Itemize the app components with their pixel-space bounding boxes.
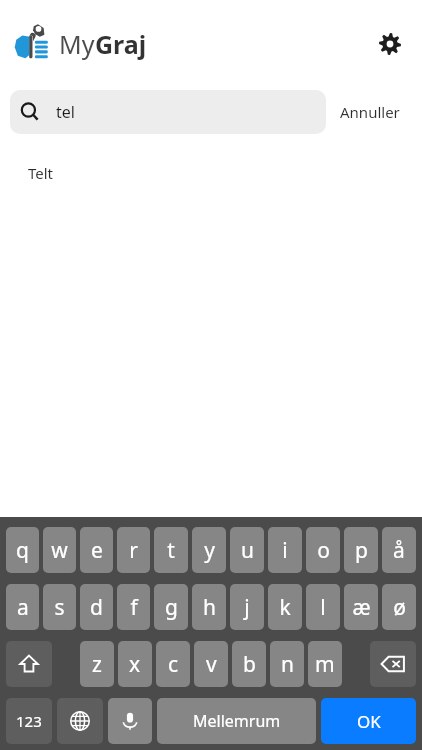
button[interactable]: o xyxy=(306,527,340,573)
staticText: p xyxy=(355,536,368,565)
staticText: e xyxy=(91,536,103,565)
button[interactable]: ø xyxy=(382,584,416,630)
button[interactable]: s xyxy=(43,584,76,630)
staticText: k xyxy=(279,593,291,622)
button[interactable]: v xyxy=(194,641,228,687)
button[interactable]: æ xyxy=(344,584,378,630)
button[interactable]: z xyxy=(80,641,114,687)
button[interactable]: c xyxy=(156,641,190,687)
button[interactable]: r xyxy=(117,527,150,573)
button[interactable]: f xyxy=(117,584,150,630)
button[interactable]: b xyxy=(232,641,266,687)
staticText: r xyxy=(129,536,138,565)
button[interactable]: x xyxy=(118,641,152,687)
button[interactable]: l xyxy=(306,584,340,630)
staticText: f xyxy=(130,593,138,622)
button[interactable]: n xyxy=(270,641,304,687)
staticText: ø xyxy=(393,593,406,622)
button[interactable]: p xyxy=(344,527,378,573)
staticText: j xyxy=(244,593,250,622)
staticText: s xyxy=(54,593,65,622)
button[interactable]: Backspace xyxy=(370,641,416,687)
staticText: å xyxy=(393,536,405,565)
staticText: Annuller xyxy=(340,102,400,122)
staticText: æ xyxy=(352,593,371,622)
button[interactable]: g xyxy=(154,584,188,630)
button[interactable]: w xyxy=(43,527,76,573)
staticText: w xyxy=(51,536,68,565)
button[interactable]: h xyxy=(192,584,226,630)
button[interactable]: å xyxy=(382,527,416,573)
staticText: a xyxy=(17,593,29,622)
button[interactable]: Mellemrum xyxy=(157,698,316,744)
staticText: q xyxy=(16,536,29,565)
button[interactable]: y xyxy=(192,527,226,573)
button[interactable]: Settings xyxy=(368,22,412,66)
button[interactable]: OK xyxy=(321,698,416,744)
staticText: Graj xyxy=(95,27,147,61)
staticText: c xyxy=(168,650,179,679)
staticText: OK xyxy=(357,710,381,733)
staticText: n xyxy=(281,650,294,679)
staticText: h xyxy=(203,593,216,622)
staticText: o xyxy=(317,536,330,565)
button[interactable]: t xyxy=(154,527,188,573)
button[interactable]: d xyxy=(80,584,113,630)
button[interactable]: q xyxy=(6,527,39,573)
staticText: 123 xyxy=(16,711,42,731)
staticText: y xyxy=(204,536,215,565)
staticText: m xyxy=(315,650,335,679)
button[interactable]: 123 xyxy=(6,698,52,744)
staticText: u xyxy=(241,536,254,565)
button[interactable]: u xyxy=(230,527,264,573)
button[interactable]: Change keyboard language xyxy=(57,698,103,744)
button[interactable]: a xyxy=(6,584,39,630)
button[interactable]: k xyxy=(268,584,302,630)
button[interactable]: Shift xyxy=(6,641,52,687)
button[interactable]: j xyxy=(230,584,264,630)
button[interactable]: e xyxy=(80,527,113,573)
staticText: My xyxy=(59,27,95,61)
button[interactable]: m xyxy=(308,641,342,687)
button[interactable]: i xyxy=(268,527,302,573)
staticText: b xyxy=(243,650,256,679)
staticText: x xyxy=(129,650,141,679)
staticText: g xyxy=(165,593,178,622)
staticText: tel xyxy=(56,101,75,123)
button[interactable]: Telt xyxy=(0,156,422,190)
staticText: Telt xyxy=(28,163,54,183)
button[interactable]: Voice input xyxy=(108,698,152,744)
staticText: t xyxy=(167,536,175,565)
staticText: l xyxy=(320,593,326,622)
button[interactable]: tel xyxy=(10,90,326,134)
staticText: z xyxy=(92,650,102,679)
staticText: Mellemrum xyxy=(193,710,281,732)
staticText: d xyxy=(90,593,103,622)
staticText: v xyxy=(206,650,217,679)
button[interactable]: Annuller xyxy=(340,102,400,122)
staticText: i xyxy=(282,536,288,565)
